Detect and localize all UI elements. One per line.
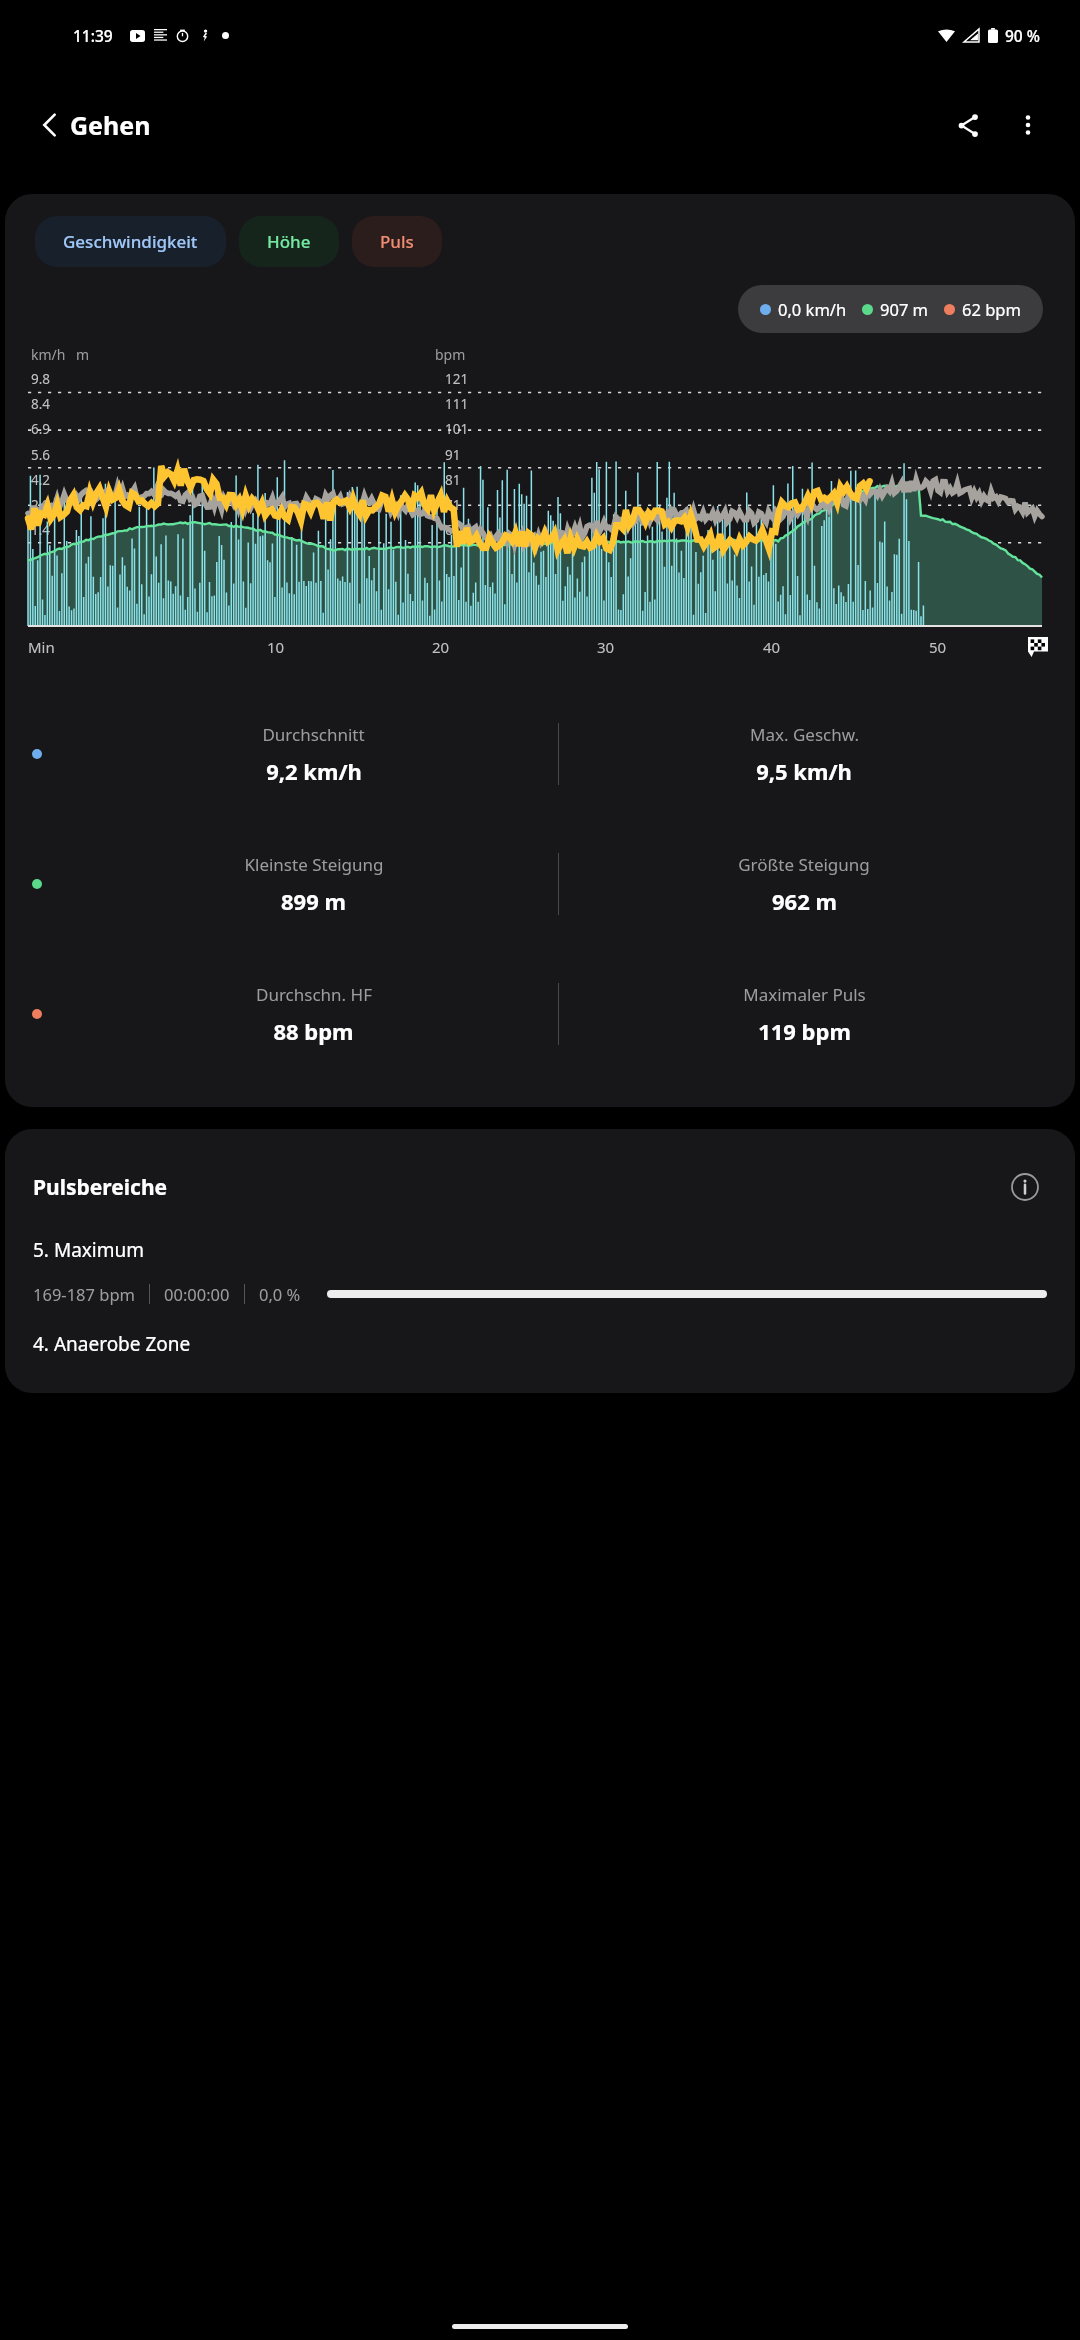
staticText: Durchschn. HF	[256, 983, 372, 1006]
staticText: 11:39	[73, 25, 113, 46]
staticText: 6.9	[31, 420, 51, 438]
staticText: Kleinste Steigung	[244, 853, 384, 876]
button[interactable]: 169-187 bpm	[33, 1283, 1047, 1305]
staticText: 30	[597, 637, 615, 657]
staticText: 121	[445, 370, 469, 388]
button[interactable]: Share	[940, 97, 996, 153]
staticText: 907 m	[880, 298, 929, 320]
staticText: km/h	[31, 345, 66, 364]
staticText: 61	[445, 521, 461, 539]
staticText: 8.4	[31, 395, 51, 413]
staticText: 0,0 km/h	[778, 298, 847, 320]
staticText: Gehen	[70, 108, 151, 142]
staticText: 88 bpm	[273, 1016, 354, 1046]
staticText: 40	[763, 637, 781, 657]
staticText: 111	[445, 395, 469, 413]
staticText: Maximaler Puls	[743, 983, 866, 1006]
staticText: 50	[929, 637, 947, 657]
staticText: 90 %	[1005, 25, 1040, 46]
staticText: 899 m	[281, 886, 346, 916]
staticText: Puls	[380, 230, 414, 253]
button[interactable]: Geschwindigkeit	[35, 216, 226, 267]
staticText: 62 bpm	[962, 298, 1021, 320]
staticText: 9.8	[31, 370, 51, 388]
button[interactable]: Durchschnitt	[5, 689, 1075, 819]
staticText: Größte Steigung	[738, 853, 870, 876]
staticText: 9,2 km/h	[266, 756, 362, 786]
staticText: Höhe	[267, 230, 311, 253]
staticText: 0,0 %	[259, 1283, 301, 1305]
staticText: 20	[432, 637, 450, 657]
staticText: m	[76, 345, 90, 364]
button[interactable]: Höhe	[239, 216, 339, 267]
staticText: 169-187 bpm	[33, 1283, 135, 1305]
button[interactable]: More options	[1000, 97, 1056, 153]
button[interactable]: Puls	[352, 216, 442, 267]
staticText: bpm	[435, 345, 466, 364]
staticText: 5.6	[31, 446, 51, 464]
button[interactable]: Kleinste Steigung	[5, 819, 1075, 949]
staticText: 4.2	[31, 471, 51, 489]
button[interactable]: Back	[22, 97, 78, 153]
staticText: Durchschnitt	[262, 723, 365, 746]
staticText: 101	[445, 420, 469, 438]
staticText: 5. Maximum	[33, 1237, 145, 1263]
staticText: 91	[445, 446, 461, 464]
staticText: 962 m	[772, 886, 837, 916]
staticText: Geschwindigkeit	[63, 230, 198, 253]
button[interactable]: Durchschn. HF	[5, 949, 1075, 1079]
staticText: 1.4	[31, 521, 51, 539]
staticText: 119 bpm	[758, 1016, 851, 1046]
staticText: Pulsbereiche	[33, 1173, 168, 1202]
staticText: 9,5 km/h	[756, 756, 852, 786]
staticText: 10	[267, 637, 285, 657]
staticText: Max. Geschw.	[750, 723, 859, 746]
button[interactable]: Info	[1003, 1165, 1047, 1209]
staticText: 71	[445, 496, 461, 514]
staticText: 4. Anaerobe Zone	[33, 1331, 191, 1357]
staticText: 81	[445, 471, 461, 489]
staticText: 00:00:00	[164, 1283, 230, 1305]
staticText: 2.8	[31, 496, 51, 514]
staticText: Min	[28, 637, 55, 657]
